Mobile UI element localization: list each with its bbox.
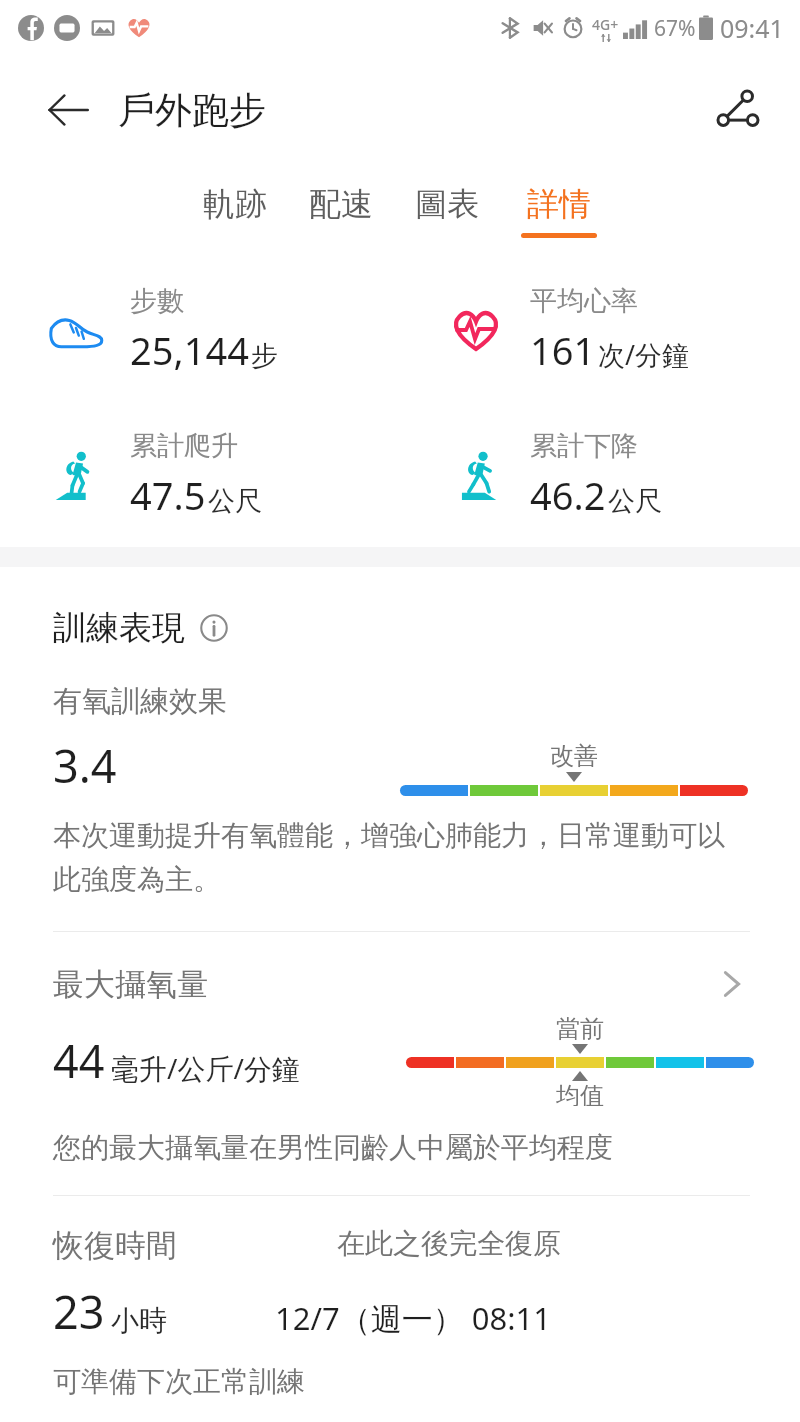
staticText: 訓練表現	[53, 607, 185, 649]
staticText: 次/分鐘	[598, 336, 690, 373]
staticText: 在此之後完全復原	[337, 1226, 561, 1261]
button[interactable]: 步數	[0, 257, 400, 402]
staticText: 4G+	[592, 15, 619, 34]
staticText: 平均心率	[530, 284, 638, 318]
staticText: 小時	[111, 1303, 167, 1338]
staticText: 67%	[654, 14, 696, 43]
staticText: 3.4	[53, 735, 117, 796]
staticText: 有氧訓練效果	[53, 683, 227, 720]
button[interactable]: 圖表	[394, 180, 500, 237]
staticText: 詳情	[527, 184, 591, 224]
staticText: 步數	[130, 284, 184, 318]
staticText: 本次運動提升有氧體能，增強心肺能力，日常運動可以此強度為主。	[53, 818, 750, 897]
staticText: 161	[530, 324, 596, 376]
staticText: 12/7（週一） 08:11	[275, 1297, 552, 1339]
staticText: 25,144	[130, 324, 249, 376]
button[interactable]: 累計爬升	[0, 402, 400, 547]
staticText: 累計下降	[530, 429, 638, 463]
staticText: 戶外跑步	[118, 87, 266, 134]
staticText: 步	[251, 339, 278, 373]
staticText: 23	[53, 1281, 105, 1342]
staticText: 可準備下次正常訓練	[53, 1364, 305, 1399]
staticText: 公尺	[208, 484, 262, 518]
staticText: 恢復時間	[53, 1226, 177, 1265]
button[interactable]: 配速	[288, 180, 394, 237]
staticText: 47.5	[130, 469, 206, 521]
button[interactable]: 累計下降	[400, 402, 800, 547]
button[interactable]: 最大攝氧量	[0, 932, 800, 1004]
staticText: 最大攝氧量	[53, 965, 208, 1004]
button[interactable]: Back	[40, 82, 96, 138]
staticText: 累計爬升	[130, 429, 238, 463]
button[interactable]: 詳情	[500, 180, 618, 242]
staticText: 您的最大攝氧量在男性同齡人中屬於平均程度	[53, 1130, 613, 1165]
staticText: 09:41	[720, 11, 784, 45]
button[interactable]: Info	[197, 611, 231, 645]
staticText: 當前	[556, 1014, 604, 1044]
button[interactable]: 軌跡	[182, 180, 288, 237]
button[interactable]: 平均心率	[400, 257, 800, 402]
staticText: 配速	[309, 184, 373, 224]
staticText: 軌跡	[203, 184, 267, 224]
staticText: 公尺	[608, 484, 662, 518]
staticText: 改善	[550, 741, 598, 771]
staticText: 圖表	[415, 184, 479, 224]
button[interactable]: Share	[706, 78, 770, 142]
staticText: 毫升/公斤/分鐘	[111, 1049, 300, 1087]
staticText: 均值	[556, 1081, 604, 1106]
staticText: 46.2	[530, 469, 606, 521]
staticText: 44	[53, 1030, 105, 1091]
